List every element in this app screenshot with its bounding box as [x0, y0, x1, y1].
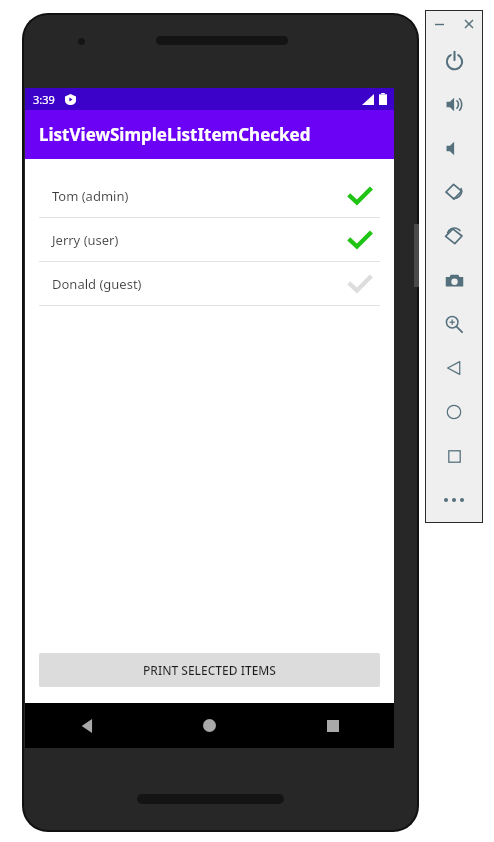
staticText: ListViewSimpleListItemChecked: [39, 123, 311, 146]
button[interactable]: Overview: [425, 434, 483, 478]
button[interactable]: Home: [425, 390, 483, 434]
button[interactable]: Rotate right: [425, 214, 483, 258]
button[interactable]: Tom (admin): [25, 174, 394, 217]
button[interactable]: Donald (guest): [25, 262, 394, 305]
staticText: Donald (guest): [52, 275, 142, 293]
button[interactable]: PRINT SELECTED ITEMS: [39, 653, 380, 687]
button[interactable]: More: [425, 478, 483, 522]
staticText: Jerry (user): [52, 231, 119, 249]
button[interactable]: Take screenshot: [425, 258, 483, 302]
staticText: Tom (admin): [52, 187, 129, 205]
button[interactable]: Minimize: [425, 10, 454, 38]
button[interactable]: Power: [425, 38, 483, 82]
button[interactable]: Recent apps: [271, 703, 394, 748]
button[interactable]: Close: [454, 10, 483, 38]
button[interactable]: Back: [25, 703, 148, 748]
button[interactable]: Volume up: [425, 82, 483, 126]
button[interactable]: Zoom: [425, 302, 483, 346]
button[interactable]: Home: [148, 703, 271, 748]
button[interactable]: Rotate left: [425, 170, 483, 214]
button[interactable]: Volume down: [425, 126, 483, 170]
button[interactable]: Back: [425, 346, 483, 390]
button[interactable]: Jerry (user): [25, 218, 394, 261]
staticText: 3:39: [33, 92, 55, 107]
staticText: PRINT SELECTED ITEMS: [143, 662, 276, 678]
